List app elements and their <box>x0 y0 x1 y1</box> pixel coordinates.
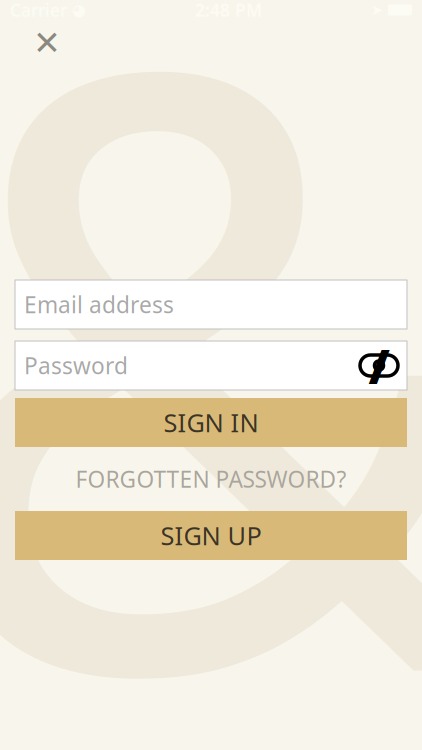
button[interactable]: SIGN UP <box>15 511 407 560</box>
button[interactable]: Close <box>18 20 76 66</box>
staticText: ◕ <box>72 1 86 19</box>
staticText: Password <box>24 350 128 380</box>
button[interactable]: Email address <box>15 280 407 329</box>
staticText: / <box>368 334 389 397</box>
button[interactable]: FORGOTTEN PASSWORD? <box>15 457 407 501</box>
button[interactable]: Password <box>15 341 351 390</box>
staticText: Email address <box>24 289 174 319</box>
staticText: SIGN UP <box>160 519 261 552</box>
button[interactable]: SIGN IN <box>15 398 407 447</box>
staticText: FORGOTTEN PASSWORD? <box>75 464 346 494</box>
button[interactable]: Show password <box>351 341 407 390</box>
staticText: SIGN IN <box>163 406 258 439</box>
staticText: & <box>0 0 422 750</box>
staticText: ✕ <box>33 24 61 62</box>
